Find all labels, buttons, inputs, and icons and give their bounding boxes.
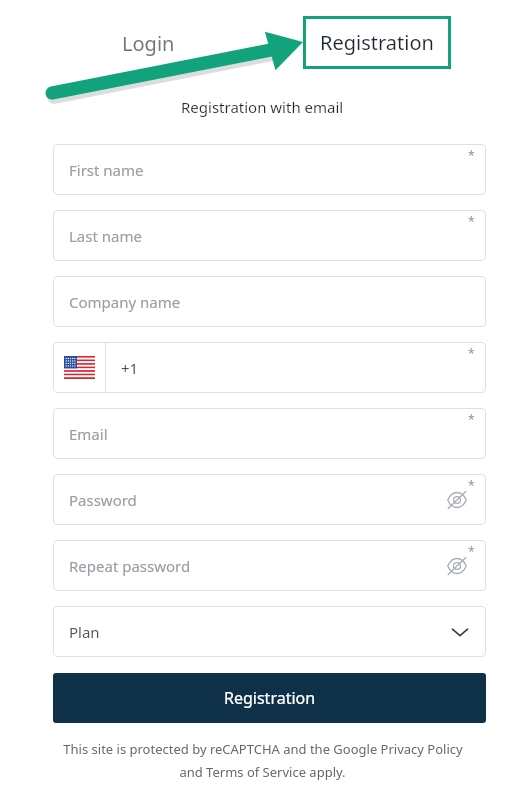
staticText: Plan <box>69 622 100 642</box>
button[interactable]: Repeat password <box>53 540 486 591</box>
button[interactable]: Registration <box>303 16 451 69</box>
staticText: * <box>468 147 475 163</box>
staticText: Registration <box>224 687 316 709</box>
button[interactable]: Show password <box>444 553 470 579</box>
staticText: Email <box>69 424 108 444</box>
staticText: +1 <box>121 358 139 378</box>
staticText: * <box>468 345 475 361</box>
staticText: * <box>468 543 475 559</box>
staticText: * <box>468 477 475 493</box>
button[interactable]: First name <box>53 144 486 195</box>
button[interactable]: Select country <box>53 342 105 393</box>
staticText: Repeat password <box>69 556 191 576</box>
staticText: Login <box>122 30 175 57</box>
staticText: Last name <box>69 226 142 246</box>
button[interactable]: Show password <box>444 487 470 513</box>
button[interactable]: Last name <box>53 210 486 261</box>
button[interactable]: Plan <box>53 606 486 657</box>
staticText: and Terms of Service apply. <box>179 763 346 781</box>
button[interactable]: Select country <box>53 342 486 393</box>
staticText: * <box>468 411 475 427</box>
staticText: * <box>468 213 475 229</box>
button[interactable]: Login <box>112 26 185 61</box>
button[interactable]: Registration <box>53 673 486 723</box>
staticText: Registration <box>320 29 434 56</box>
staticText: Registration with email <box>181 97 344 117</box>
staticText: This site is protected by reCAPTCHA and … <box>63 740 463 758</box>
staticText: First name <box>69 160 144 180</box>
staticText: Company name <box>69 292 181 312</box>
button[interactable]: Password <box>53 474 486 525</box>
button[interactable]: Company name <box>53 276 486 327</box>
staticText: Password <box>69 490 137 510</box>
button[interactable]: Email <box>53 408 486 459</box>
